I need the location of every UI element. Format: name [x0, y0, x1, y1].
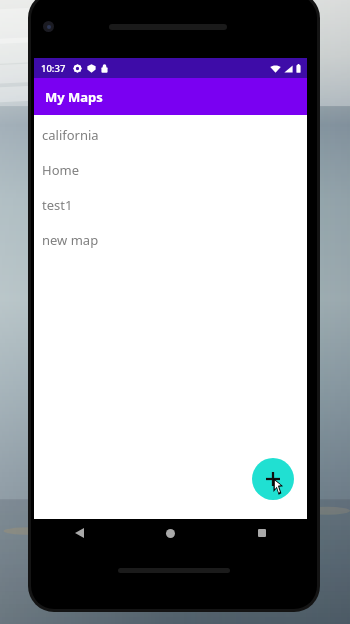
button[interactable]: Home — [34, 152, 307, 187]
button[interactable]: new map — [34, 222, 307, 257]
staticText: california — [42, 126, 99, 144]
button[interactable]: Recent apps — [216, 519, 307, 547]
staticText: test1 — [42, 196, 73, 214]
button[interactable]: california — [34, 117, 307, 152]
staticText: new map — [42, 231, 99, 249]
button[interactable]: My Maps — [34, 78, 307, 115]
staticText: 10:37 — [41, 62, 66, 75]
staticText: Home — [42, 161, 79, 179]
button[interactable]: test1 — [34, 187, 307, 222]
button[interactable]: Back — [34, 519, 125, 547]
button[interactable]: Create new map — [252, 458, 294, 500]
button[interactable]: Home — [125, 519, 216, 547]
staticText: My Maps — [45, 88, 103, 106]
